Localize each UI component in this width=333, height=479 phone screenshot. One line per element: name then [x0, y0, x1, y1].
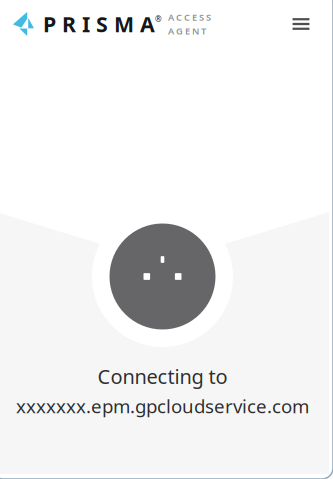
staticText: ®	[155, 14, 162, 24]
staticText: A G E N T	[168, 25, 206, 37]
button[interactable]: Menu	[281, 7, 321, 41]
staticText: xxxxxxx.epm.gpcloudservice.com	[16, 394, 309, 418]
staticText: Connecting to	[97, 363, 227, 390]
staticText: A C C E S S	[168, 11, 211, 23]
button[interactable]: Prisma Access Agent	[13, 9, 263, 39]
staticText: P R I S M A	[43, 10, 155, 38]
